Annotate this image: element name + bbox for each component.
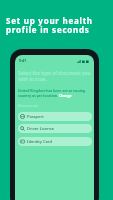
button[interactable]: Driver License [18,124,92,133]
staticText: Passport [27,114,44,119]
staticText: United Kingdom has been set as issuing c… [18,88,87,98]
staticText: profile in seconds [6,24,90,35]
staticText: Set up your health [6,15,93,26]
button[interactable]: Passport [18,112,92,121]
button[interactable]: Identity Card [18,137,92,146]
staticText: Select the type of document you wish to … [18,70,91,82]
staticText: Documents [18,103,39,108]
staticText: Identity Card [27,139,52,144]
other: Status icons [77,60,89,63]
staticText: Driver License [27,126,55,131]
staticText: 9:41 [19,58,27,63]
